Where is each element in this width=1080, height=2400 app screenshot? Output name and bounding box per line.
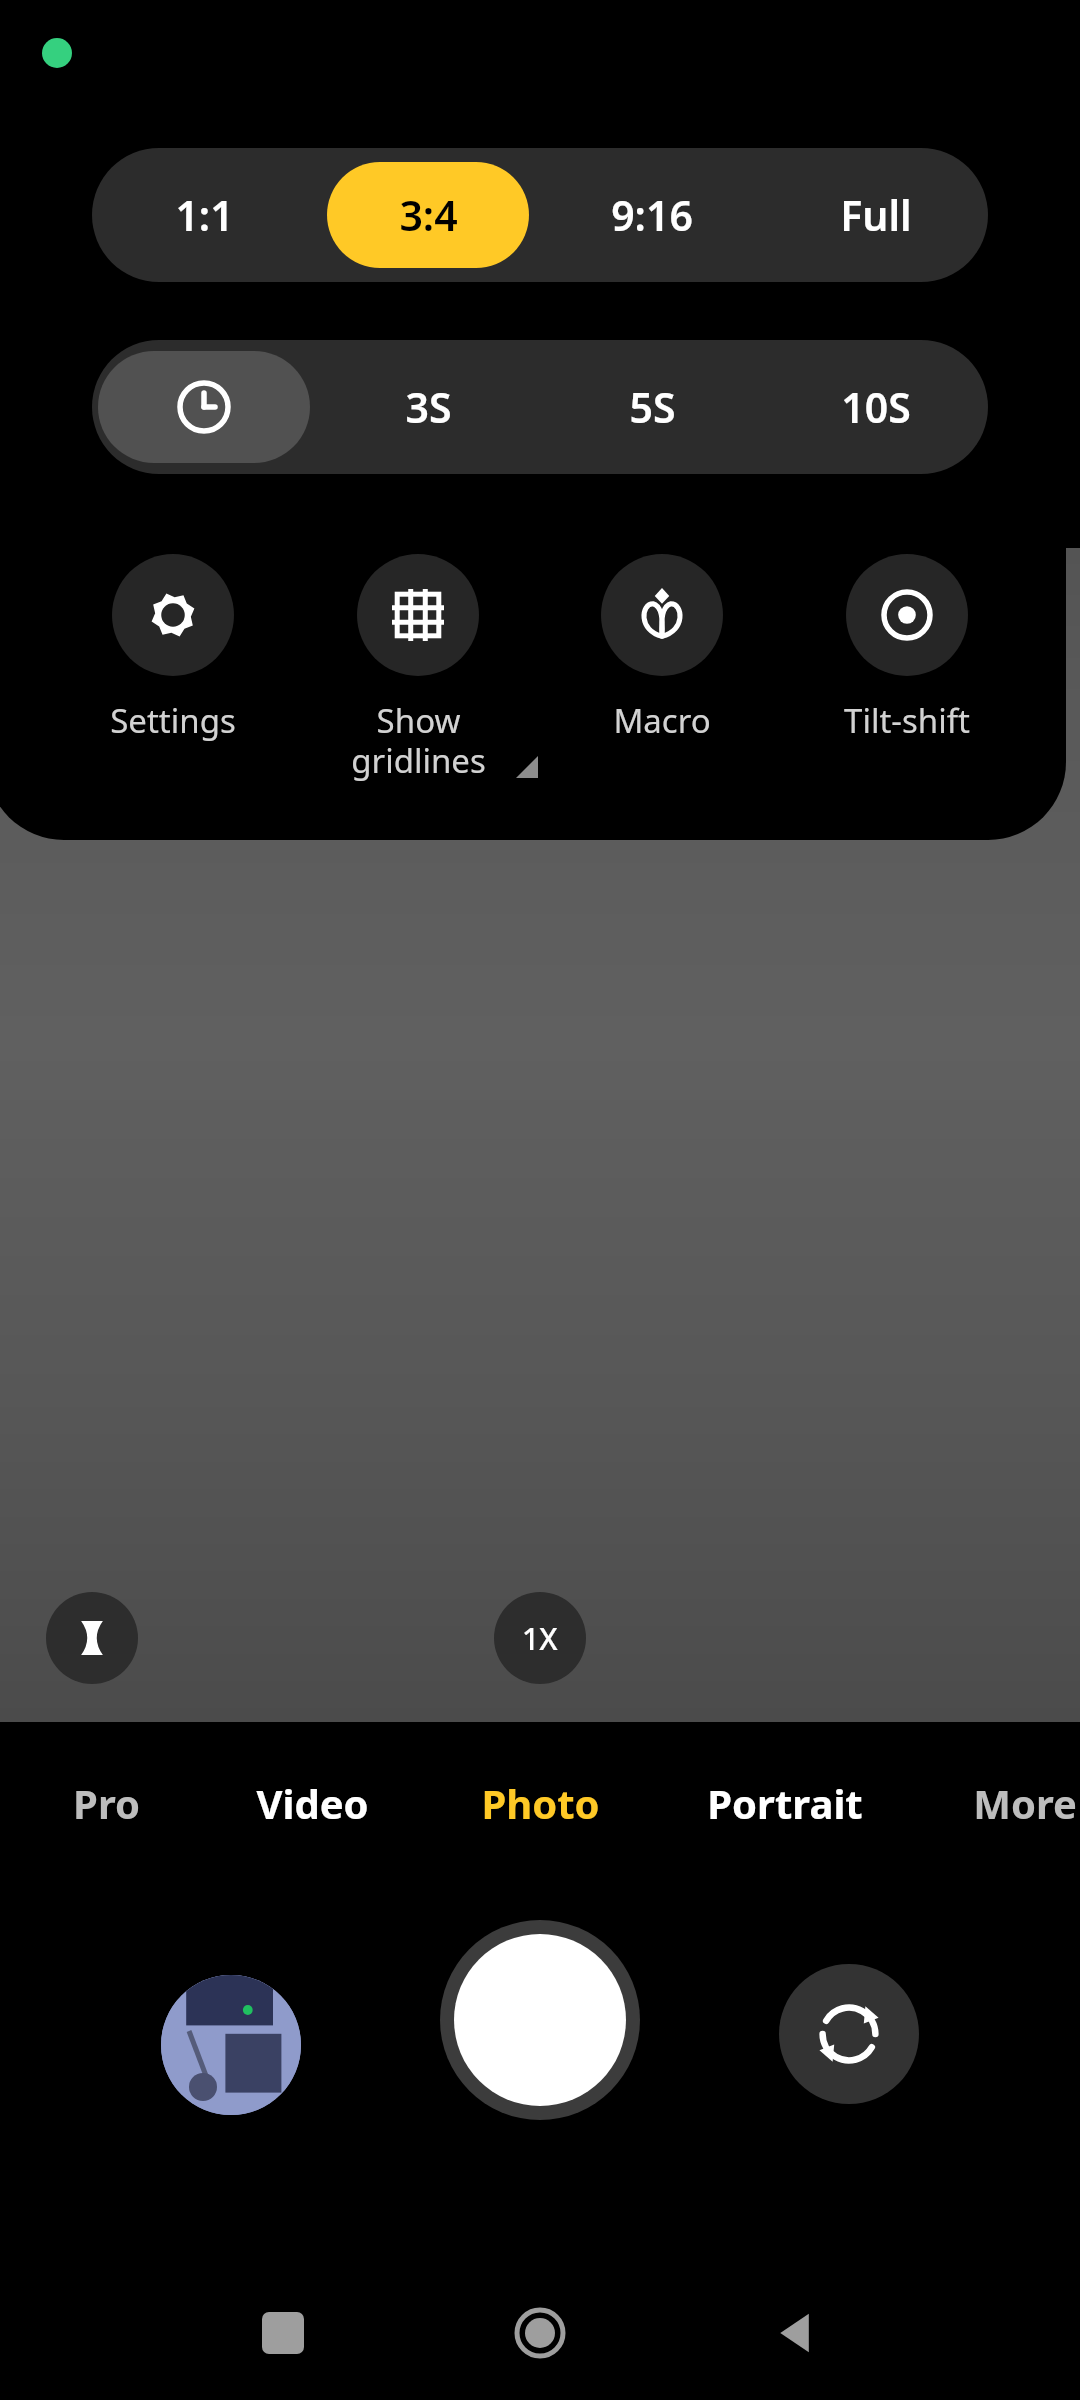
staticText: 9:16 (611, 187, 693, 243)
button[interactable]: 3S (316, 340, 540, 474)
button[interactable]: Video (207, 1748, 417, 1858)
button[interactable]: 5S (540, 340, 764, 474)
staticText: 10S (841, 379, 911, 435)
staticText: 3S (405, 379, 452, 435)
button[interactable]: Gallery (161, 1975, 301, 2115)
button[interactable]: Show gridlines (310, 554, 526, 783)
staticText: 1X (522, 1618, 558, 1659)
button[interactable]: 1X (494, 1592, 586, 1684)
button[interactable]: Settings (65, 554, 281, 743)
button[interactable]: Photo (435, 1748, 645, 1858)
button[interactable]: Pro (1, 1748, 211, 1858)
button[interactable]: More (920, 1748, 1080, 1858)
staticText: Tilt-shift (844, 698, 970, 743)
staticText: Photo (481, 1776, 600, 1830)
button[interactable]: 10S (764, 340, 988, 474)
button[interactable]: Tilt-shift (799, 554, 1015, 743)
staticText: Video (256, 1776, 369, 1830)
button[interactable]: Home (497, 2290, 583, 2376)
button[interactable]: 1:1 (92, 148, 316, 282)
staticText: Portrait (707, 1776, 863, 1830)
button[interactable]: Full (764, 148, 988, 282)
button[interactable]: 9:16 (540, 148, 764, 282)
button[interactable]: Recents (240, 2290, 326, 2376)
staticText: Full (840, 187, 912, 243)
staticText: Show gridlines (351, 698, 486, 783)
staticText: 1:1 (175, 187, 234, 243)
staticText: Settings (110, 698, 236, 743)
button[interactable]: Timer off (98, 351, 310, 463)
staticText: Macro (613, 698, 711, 743)
button[interactable]: Lens correction (46, 1592, 138, 1684)
button[interactable]: 3:4 (327, 162, 529, 268)
button[interactable]: Back (752, 2290, 838, 2376)
staticText: More (973, 1776, 1077, 1830)
button[interactable]: Shutter (440, 1920, 640, 2120)
button[interactable]: Macro (554, 554, 770, 743)
staticText: Pro (73, 1776, 140, 1830)
staticText: 3:4 (399, 187, 458, 243)
button[interactable]: Portrait (680, 1748, 890, 1858)
staticText: 5S (629, 379, 676, 435)
button[interactable]: Switch camera (779, 1964, 919, 2104)
